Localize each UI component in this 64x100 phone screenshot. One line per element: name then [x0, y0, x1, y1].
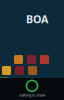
staticText: BOA — [26, 12, 48, 26]
staticText: nothing to show — [19, 92, 45, 98]
